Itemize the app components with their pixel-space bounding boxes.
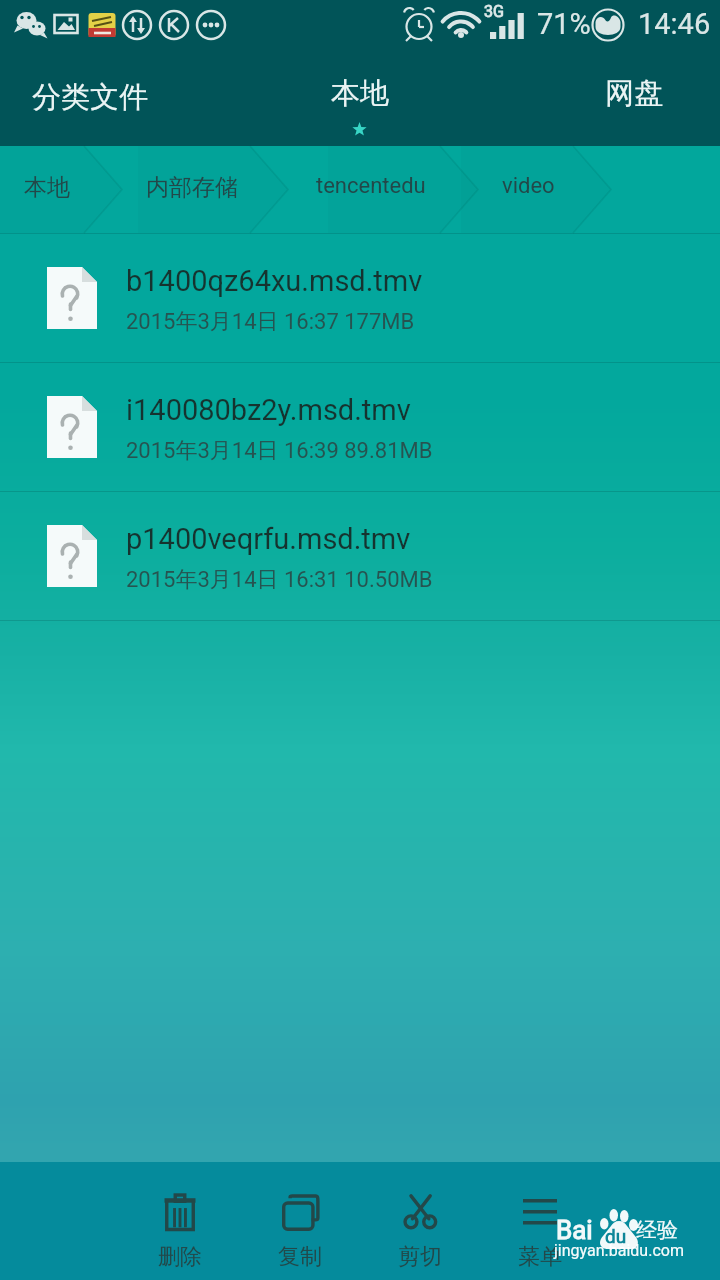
staticText: 复制 <box>278 1243 322 1271</box>
button[interactable]: 本地 <box>250 56 470 146</box>
staticText: 删除 <box>158 1243 202 1271</box>
staticText: 分类文件 <box>32 79 148 116</box>
button[interactable]: Copy <box>240 1162 360 1280</box>
staticText: 剪切 <box>398 1243 442 1271</box>
staticText: 经验 <box>636 1217 678 1243</box>
staticText: 2015年3月14日 16:31 10.50MB <box>126 566 433 594</box>
staticText: 2015年3月14日 16:39 89.81MB <box>126 437 433 465</box>
button[interactable]: i140080bz2y.msd.tmv <box>0 363 720 491</box>
button[interactable]: Cut <box>360 1162 480 1280</box>
staticText: 2015年3月14日 16:37 177MB <box>126 308 415 336</box>
button[interactable]: 分类文件 <box>0 56 240 146</box>
button[interactable]: tencentedu <box>316 173 426 199</box>
staticText: 14:46 <box>638 7 711 41</box>
staticText: 本地 <box>331 75 389 112</box>
button[interactable]: 网盘 <box>500 56 700 146</box>
button[interactable]: Delete <box>120 1162 240 1280</box>
staticText: 菜单 <box>518 1243 562 1271</box>
staticText: 网盘 <box>605 75 663 112</box>
staticText: du <box>605 1225 627 1247</box>
staticText: 3G <box>484 2 504 21</box>
button[interactable]: Menu <box>480 1162 600 1280</box>
button[interactable]: p1400veqrfu.msd.tmv <box>0 492 720 620</box>
staticText: p1400veqrfu.msd.tmv <box>126 522 411 556</box>
button[interactable]: video <box>502 173 555 199</box>
staticText: b1400qz64xu.msd.tmv <box>126 264 423 298</box>
button[interactable]: b1400qz64xu.msd.tmv <box>0 234 720 362</box>
staticText: jingyan.baidu.com <box>554 1241 684 1260</box>
staticText: 71% <box>537 7 591 41</box>
staticText: i140080bz2y.msd.tmv <box>126 393 411 427</box>
button[interactable]: 内部存储 <box>146 173 238 202</box>
staticText: Bai <box>556 1215 593 1245</box>
button[interactable]: 本地 <box>24 173 70 202</box>
